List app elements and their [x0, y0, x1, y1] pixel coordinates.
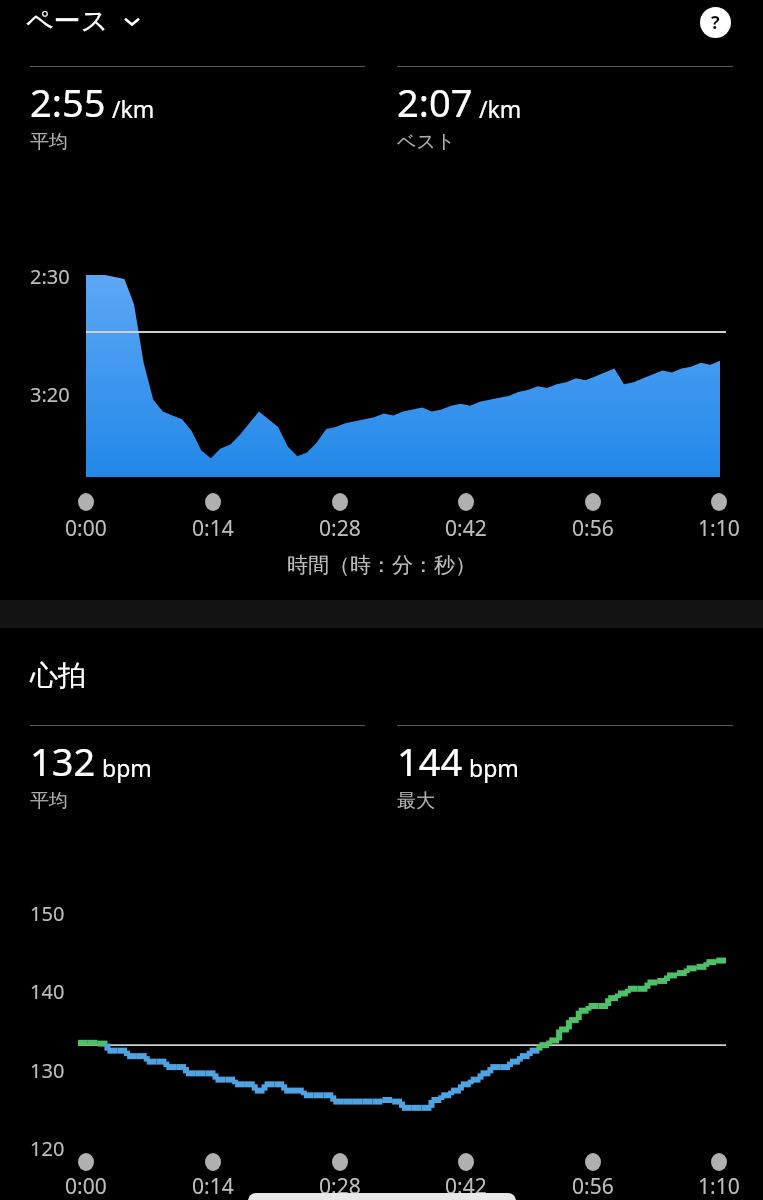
staticText: 130: [30, 1057, 65, 1084]
staticText: 0:56: [572, 514, 614, 543]
staticText: 2:55: [30, 76, 106, 128]
button[interactable]: 132: [30, 735, 152, 813]
staticText: ?: [711, 10, 720, 35]
staticText: 132: [30, 735, 96, 787]
staticText: 0:42: [445, 514, 487, 543]
staticText: 2:30: [30, 263, 70, 290]
staticText: 0:56: [572, 1172, 614, 1200]
button[interactable]: ペース: [26, 4, 143, 38]
staticText: 0:28: [319, 514, 361, 543]
staticText: 0:42: [445, 1172, 487, 1200]
staticText: 心拍: [30, 658, 86, 693]
staticText: 0:14: [192, 1172, 234, 1200]
staticText: 0:28: [319, 1172, 361, 1200]
staticText: bpm: [469, 752, 519, 783]
staticText: 平均: [30, 130, 68, 154]
staticText: 3:20: [30, 381, 70, 408]
staticText: 0:00: [65, 1172, 107, 1200]
button[interactable]: 2:07: [397, 76, 522, 154]
staticText: /km: [112, 93, 155, 124]
staticText: 120: [30, 1135, 65, 1162]
staticText: 0:14: [192, 514, 234, 543]
staticText: 時間（時：分：秒）: [0, 552, 763, 578]
staticText: /km: [479, 93, 522, 124]
staticText: ベスト: [397, 130, 456, 154]
staticText: 平均: [30, 789, 68, 813]
staticText: 最大: [397, 789, 435, 813]
staticText: 1:10: [698, 1172, 740, 1200]
staticText: 150: [30, 900, 65, 927]
staticText: 2:07: [397, 76, 473, 128]
button[interactable]: 144: [397, 735, 519, 813]
staticText: 0:00: [65, 514, 107, 543]
staticText: 1:10: [698, 514, 740, 543]
staticText: 140: [30, 978, 65, 1005]
staticText: bpm: [102, 752, 152, 783]
staticText: 144: [397, 735, 463, 787]
staticText: ペース: [26, 4, 109, 38]
button[interactable]: ヘルプ: [697, 4, 733, 40]
button[interactable]: 2:55: [30, 76, 155, 154]
